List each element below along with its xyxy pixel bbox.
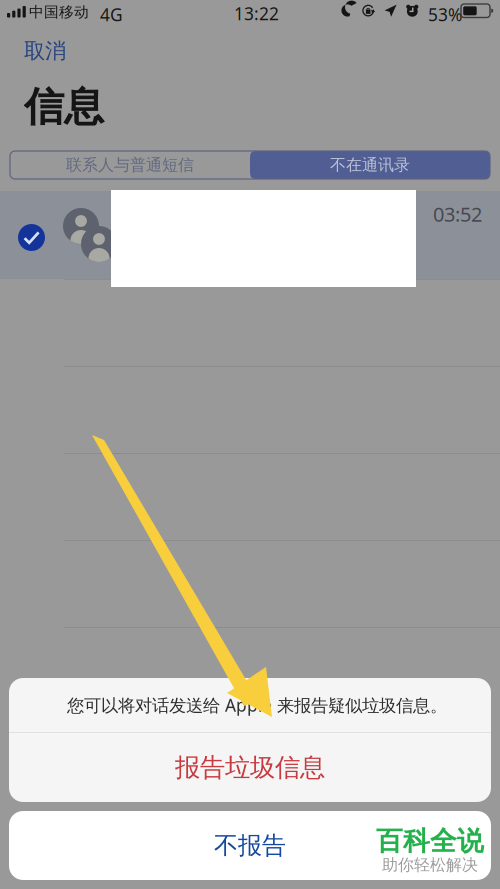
staticText: 信息 xyxy=(24,82,104,131)
button[interactable]: 报告垃圾信息 xyxy=(9,733,491,802)
staticText: 中国移动 xyxy=(29,3,89,21)
staticText: 不报告 xyxy=(214,831,286,860)
button[interactable]: 不在通讯录 xyxy=(250,151,490,179)
button[interactable]: 不报告 xyxy=(9,811,491,880)
staticText: 03:52 xyxy=(433,201,482,227)
staticText: 不在通讯录 xyxy=(330,155,410,175)
staticText: 您可以将对话发送给 Apple 来报告疑似垃圾信息。 xyxy=(67,693,447,716)
button[interactable]: 取消 xyxy=(24,34,82,68)
staticText: 报告垃圾信息 xyxy=(175,752,325,783)
button[interactable]: 03:52 xyxy=(0,191,500,279)
staticText: 取消 xyxy=(24,38,66,64)
staticText: 4G xyxy=(100,3,123,26)
staticText: 联系人与普通短信 xyxy=(66,155,194,175)
button[interactable]: 联系人与普通短信 xyxy=(10,151,250,179)
staticText: 百科全说 xyxy=(376,825,484,857)
staticText: 53% xyxy=(428,3,462,26)
staticText: 助你轻松解决 xyxy=(382,855,478,875)
staticText: 13:22 xyxy=(234,2,279,25)
